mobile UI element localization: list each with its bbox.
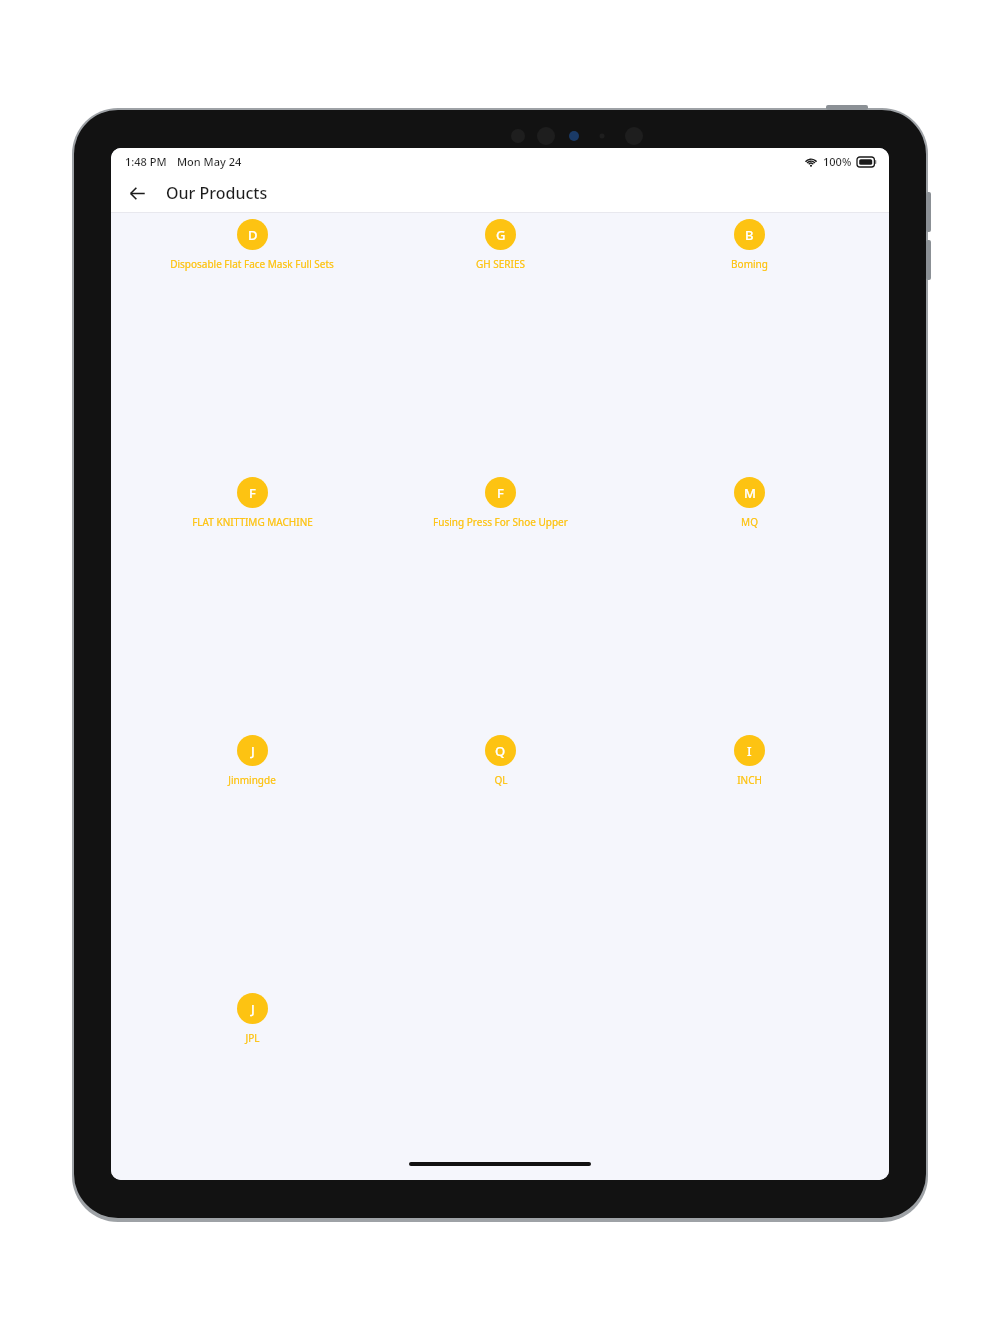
staticText: M [744,484,756,502]
button[interactable]: Back [118,174,156,212]
staticText: Jinmingde [228,773,276,787]
staticText: Q [495,742,506,760]
staticText: FLAT KNITTIMG MACHINE [192,515,313,529]
button[interactable]: F [433,477,568,529]
button[interactable]: F [192,477,313,529]
button[interactable]: D [170,219,334,271]
staticText: GH SERIES [476,257,525,271]
staticText: MQ [741,515,758,529]
staticText: Boming [731,257,768,271]
button[interactable]: I [734,735,765,787]
button[interactable]: B [731,219,768,271]
staticText: G [496,226,506,244]
staticText: 1:48 PM [125,154,167,169]
staticText: D [248,226,258,244]
staticText: B [745,226,754,244]
button[interactable]: Q [485,735,516,787]
staticText: 100% [823,154,852,169]
button[interactable]: J [237,993,268,1045]
staticText: I [747,742,752,760]
staticText: JPL [245,1031,260,1045]
staticText: J [251,1000,255,1018]
staticText: INCH [737,773,762,787]
staticText: Fusing Press For Shoe Upper [433,515,568,529]
staticText: F [497,484,504,502]
staticText: F [249,484,256,502]
button[interactable]: G [476,219,525,271]
button[interactable]: J [228,735,276,787]
staticText: J [251,742,255,760]
staticText: Our Products [166,182,268,204]
staticText: QL [494,773,508,787]
staticText: Disposable Flat Face Mask Full Sets [170,257,334,271]
staticText: Mon May 24 [177,154,242,169]
button[interactable]: M [734,477,765,529]
